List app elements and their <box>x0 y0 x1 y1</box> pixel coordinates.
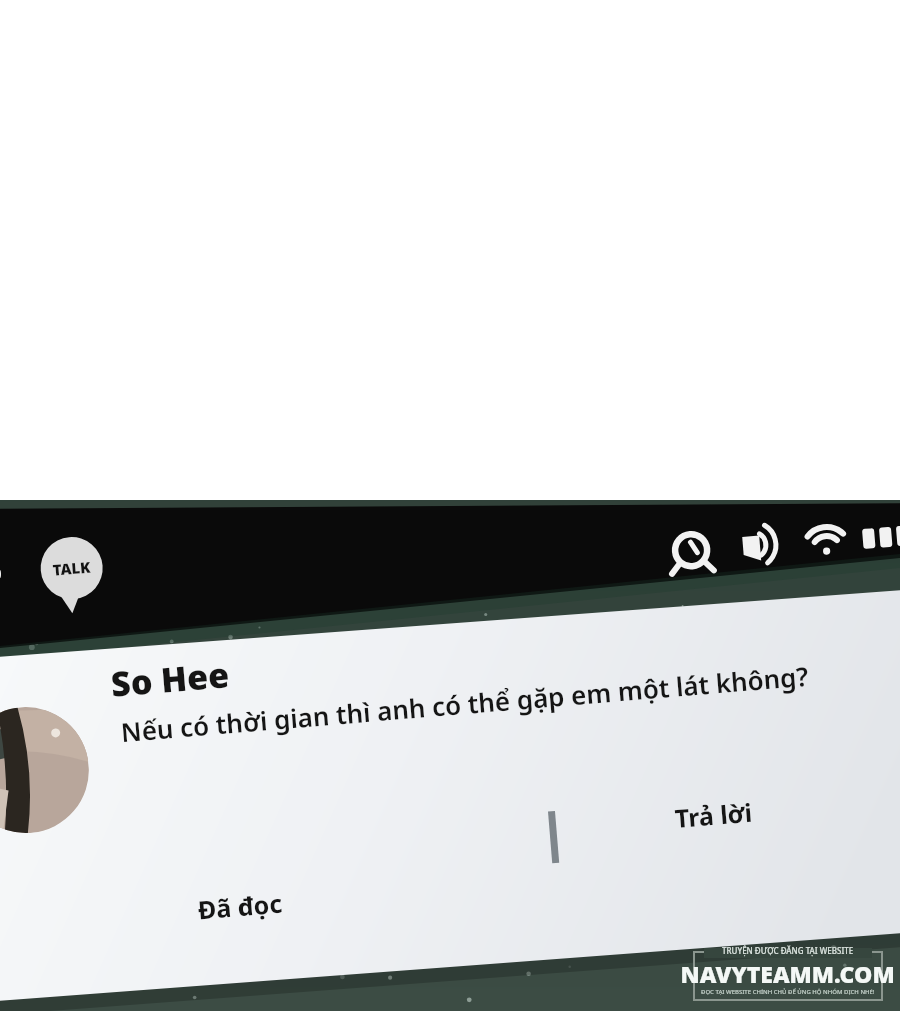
button[interactable]: KakaoTalk <box>30 540 115 610</box>
button[interactable]: Wi-Fi <box>800 502 852 557</box>
button[interactable]: Đã đọc <box>150 880 400 960</box>
button[interactable]: Message from So Hee <box>0 640 900 830</box>
button[interactable]: Volume <box>730 503 790 558</box>
button[interactable]: Alarm <box>665 505 720 560</box>
button[interactable]: Signal strength <box>855 500 900 555</box>
